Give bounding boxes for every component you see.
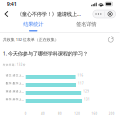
staticText: 116 — [78, 74, 84, 77]
staticText: 40 — [41, 112, 45, 115]
button[interactable]: 结果统计 — [7, 20, 60, 33]
staticText: 有效答题: 132份 — [3, 63, 26, 66]
staticText: 131 — [84, 98, 90, 101]
button[interactable]: Refresh — [107, 35, 115, 43]
staticText: 80 — [58, 112, 62, 115]
staticText: 117 — [78, 82, 84, 85]
staticText: 120 — [74, 112, 80, 115]
staticText: 1. 今天你参与了哪些学科课程的学习？ — [3, 50, 88, 57]
staticText: 200 — [109, 112, 115, 115]
button[interactable]: 签名详情 — [60, 20, 113, 33]
staticText: 数学-数学上… — [6, 82, 24, 85]
staticText: 9:41 — [7, 0, 17, 8]
staticText: 0 — [25, 112, 27, 115]
staticText: 签名详情 — [76, 21, 96, 28]
staticText: 结果统计 — [23, 21, 43, 28]
button[interactable]: Close — [104, 10, 116, 18]
staticText: 共收集 132 位表单（正在收集） — [3, 37, 59, 42]
staticText: 科学-科学上… — [6, 98, 24, 101]
button[interactable]: Back — [0, 8, 13, 20]
button[interactable]: More — [93, 10, 104, 18]
staticText: 英语-英语上… — [6, 90, 24, 93]
staticText: 160 — [91, 112, 97, 115]
staticText: 129 — [83, 90, 89, 93]
staticText: 语文-语文上… — [6, 74, 24, 77]
staticText: 《童心不停学！》邀请线上… — [17, 10, 81, 18]
